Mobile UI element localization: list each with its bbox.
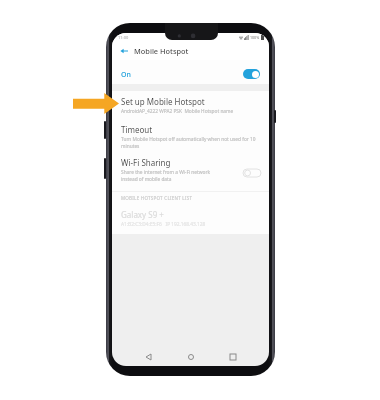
button[interactable]: Recent apps	[226, 350, 240, 364]
staticText: On	[121, 70, 131, 80]
staticText: Set up Mobile Hotspot	[121, 96, 205, 107]
staticText: Galaxy S9 +	[121, 209, 164, 220]
button[interactable]: Galaxy S9 +	[112, 207, 269, 231]
staticText: 11:00	[118, 35, 129, 40]
button[interactable]: Set up Mobile Hotspot	[112, 91, 269, 122]
staticText: Timeout	[121, 124, 153, 135]
staticText: A1:B2:C3:D4:E5:F6 IP 192.168.43.128	[121, 221, 206, 228]
staticText: Turn Mobile Hotspot off automatically wh…	[121, 136, 257, 150]
button[interactable]: Back	[119, 46, 129, 56]
staticText: Wi-Fi Sharing	[121, 157, 171, 168]
button[interactable]: Back	[141, 350, 155, 364]
staticText: Mobile Hotspot	[134, 46, 189, 56]
staticText: Share the internet from a Wi-Fi network …	[121, 169, 225, 183]
staticText: 100%	[250, 35, 260, 40]
staticText: AndroidAP_4222 WPA2 PSK Mobile Hotspot n…	[121, 108, 234, 115]
button[interactable]: Timeout	[112, 122, 269, 157]
button[interactable]: Wi-Fi Sharing	[112, 155, 269, 190]
staticText: MOBILE HOTSPOT CLIENT LIST	[121, 195, 193, 201]
button[interactable]: Wi-Fi Sharing toggle	[243, 169, 261, 177]
button[interactable]: On	[112, 60, 269, 84]
button[interactable]: Home	[184, 350, 198, 364]
